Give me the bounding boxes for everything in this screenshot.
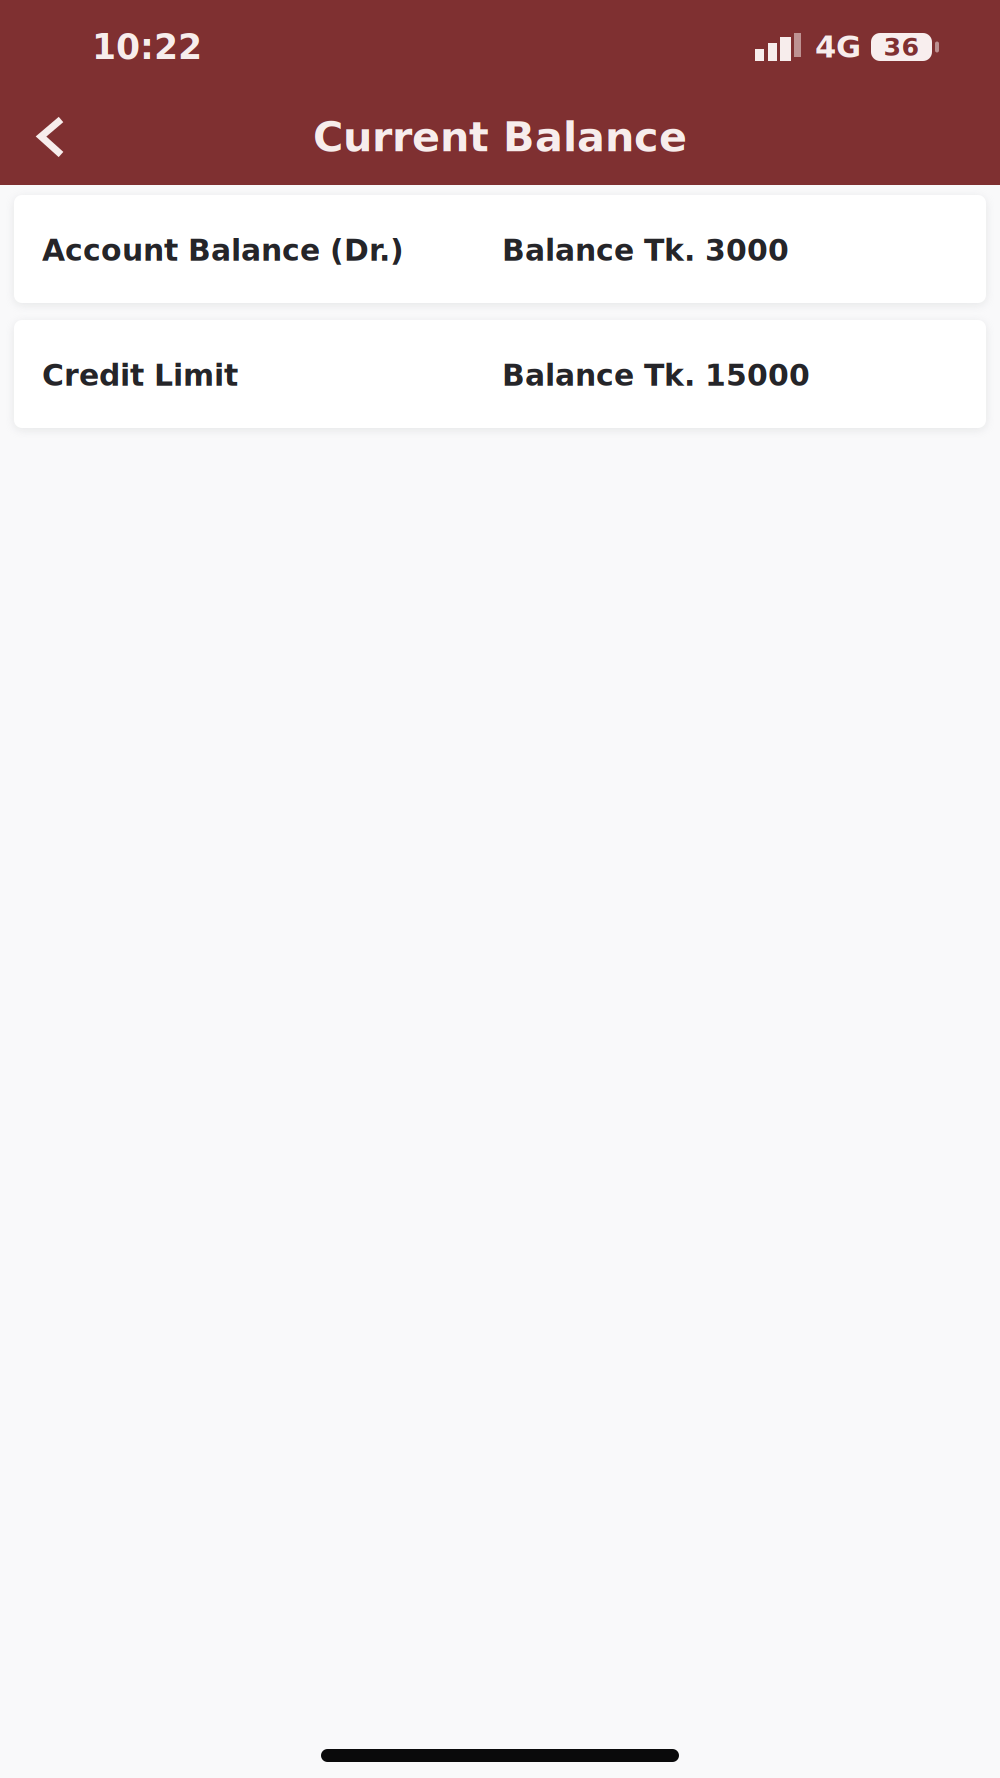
staticText: 4G — [815, 29, 861, 65]
button[interactable]: Account Balance (Dr.) — [14, 195, 986, 303]
staticText: Balance Tk. 15000 — [502, 358, 810, 393]
staticText: Current Balance — [313, 113, 687, 161]
staticText: 36 — [883, 32, 919, 62]
staticText: Account Balance (Dr.) — [42, 233, 404, 268]
button[interactable]: Credit Limit — [14, 320, 986, 428]
staticText: Credit Limit — [42, 358, 238, 393]
staticText: 10:22 — [92, 27, 202, 67]
staticText: Balance Tk. 3000 — [502, 233, 789, 268]
button[interactable]: Back — [0, 78, 91, 185]
